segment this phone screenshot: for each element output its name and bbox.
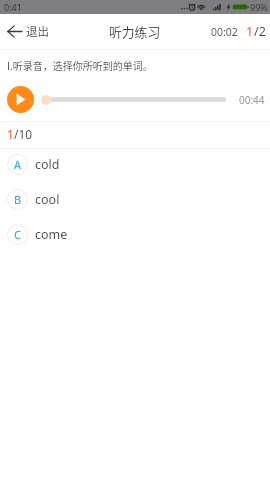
staticText: I.听录音，选择你所听到的单词。 <box>7 58 153 72</box>
staticText: 99% <box>250 1 268 13</box>
staticText: cold <box>35 156 60 173</box>
staticText: /10 <box>14 126 33 142</box>
staticText: B <box>14 192 22 207</box>
staticText: cool <box>35 191 60 208</box>
button[interactable]: Play <box>7 86 34 113</box>
other: Back <box>7 25 22 38</box>
staticText: 00:02 <box>211 25 238 39</box>
staticText: 0:41 <box>4 1 22 13</box>
staticText: 1 <box>246 23 254 40</box>
button[interactable]: A <box>0 154 270 175</box>
staticText: /2 <box>254 23 266 40</box>
staticText: 听力练习 <box>109 22 161 41</box>
staticText: C <box>14 227 21 242</box>
staticText: 退出 <box>26 23 49 40</box>
button[interactable]: Seek <box>41 95 51 105</box>
button[interactable]: B <box>0 189 270 210</box>
staticText: come <box>35 226 68 243</box>
button[interactable]: Back <box>0 23 57 40</box>
staticText: 00:44 <box>239 93 265 107</box>
staticText: 1 <box>7 126 14 142</box>
staticText: A <box>14 157 22 172</box>
button[interactable]: C <box>0 224 270 245</box>
